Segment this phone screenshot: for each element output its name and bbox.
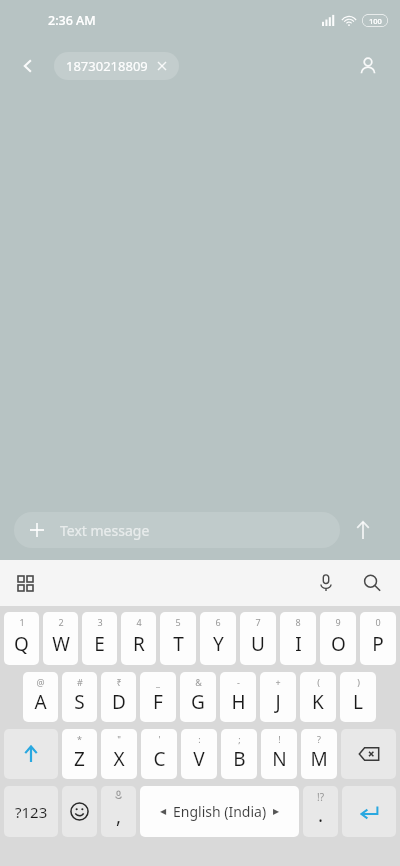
button[interactable]: ' xyxy=(141,729,177,779)
button[interactable]: @ xyxy=(23,672,58,722)
button[interactable]: Emoji xyxy=(62,786,97,837)
staticText: , xyxy=(116,803,122,829)
button[interactable]: Symbols xyxy=(4,786,58,837)
staticText: 4 xyxy=(136,616,142,628)
staticText: Text message xyxy=(60,521,150,540)
staticText: C xyxy=(153,746,166,772)
staticText: ₹ xyxy=(116,676,122,688)
staticText: 1 xyxy=(19,616,25,628)
button[interactable]: * xyxy=(62,729,97,779)
button[interactable]: ₹ xyxy=(101,672,136,722)
staticText: O xyxy=(331,631,346,657)
button[interactable]: Voice input xyxy=(308,565,344,601)
staticText: ? xyxy=(317,733,321,745)
staticText: G xyxy=(191,689,205,715)
button[interactable]: - xyxy=(220,672,256,722)
staticText: Q xyxy=(14,631,29,657)
staticText: & xyxy=(195,676,202,688)
staticText: . xyxy=(318,802,324,828)
button[interactable]: : xyxy=(181,729,217,779)
button[interactable]: ! xyxy=(261,729,297,779)
staticText: H xyxy=(231,689,246,715)
staticText: Y xyxy=(213,631,224,657)
staticText: ?123 xyxy=(15,802,48,822)
button[interactable]: " xyxy=(101,729,137,779)
staticText: A xyxy=(34,689,47,715)
staticText: S xyxy=(74,689,85,715)
button[interactable]: 18730218809 xyxy=(54,52,179,80)
staticText: K xyxy=(312,689,324,715)
staticText: 7 xyxy=(255,616,261,628)
staticText: ' xyxy=(158,733,161,745)
button[interactable]: Contact details xyxy=(348,46,388,86)
staticText: E xyxy=(94,631,105,657)
staticText: D xyxy=(112,689,126,715)
button[interactable]: Keyboard menu xyxy=(8,566,42,600)
button[interactable]: Period xyxy=(303,786,338,837)
staticText: + xyxy=(275,676,281,688)
button[interactable]: ( xyxy=(300,672,336,722)
staticText: ) xyxy=(357,676,360,688)
staticText: 18730218809 xyxy=(66,57,148,75)
staticText: B xyxy=(233,746,246,772)
staticText: R xyxy=(133,631,145,657)
button[interactable]: 9 xyxy=(320,612,356,665)
button[interactable]: # xyxy=(62,672,97,722)
staticText: ; xyxy=(238,733,241,745)
staticText: T xyxy=(173,631,184,657)
staticText: 8 xyxy=(295,616,301,628)
button[interactable]: + xyxy=(260,672,296,722)
staticText: ( xyxy=(317,676,320,688)
staticText: Z xyxy=(74,746,85,772)
staticText: U xyxy=(251,631,265,657)
staticText: W xyxy=(52,631,70,657)
staticText: @ xyxy=(36,676,45,688)
staticText: ! xyxy=(278,733,281,745)
button[interactable]: Enter xyxy=(342,786,396,837)
staticText: L xyxy=(353,689,363,715)
button[interactable]: _ xyxy=(140,672,176,722)
button[interactable]: Back xyxy=(10,48,46,84)
button[interactable]: 7 xyxy=(240,612,276,665)
staticText: 2 xyxy=(58,616,64,628)
staticText: 100 xyxy=(369,16,382,26)
button[interactable]: Comma xyxy=(101,786,136,837)
button[interactable]: 2 xyxy=(43,612,78,665)
staticText: - xyxy=(237,676,240,688)
button[interactable]: 1 xyxy=(4,612,39,665)
button[interactable]: 6 xyxy=(200,612,236,665)
staticText: N xyxy=(272,746,287,772)
staticText: 3 xyxy=(97,616,103,628)
button[interactable]: 0 xyxy=(360,612,396,665)
button[interactable]: 5 xyxy=(160,612,196,665)
button[interactable]: ) xyxy=(340,672,376,722)
button[interactable]: Space, English (India) xyxy=(140,786,299,837)
staticText: 6 xyxy=(215,616,221,628)
staticText: 2:36 AM xyxy=(48,12,96,29)
staticText: English (India) xyxy=(173,802,267,821)
staticText: P xyxy=(372,631,384,657)
staticText: ◀ xyxy=(160,807,167,816)
button[interactable]: 8 xyxy=(280,612,316,665)
staticText: ▶ xyxy=(273,807,280,816)
staticText: 5 xyxy=(175,616,181,628)
button[interactable]: ; xyxy=(221,729,257,779)
staticText: V xyxy=(193,746,205,772)
staticText: I xyxy=(295,631,302,657)
staticText: : xyxy=(198,733,201,745)
button[interactable]: Shift xyxy=(4,729,58,779)
button[interactable]: 4 xyxy=(121,612,156,665)
staticText: " xyxy=(117,733,121,745)
button[interactable]: 3 xyxy=(82,612,117,665)
staticText: 0 xyxy=(375,616,381,628)
button[interactable]: ? xyxy=(301,729,337,779)
staticText: * xyxy=(77,733,82,745)
button[interactable]: Text message xyxy=(14,512,340,548)
staticText: M xyxy=(310,746,328,772)
button[interactable]: Search xyxy=(354,565,390,601)
button[interactable]: & xyxy=(180,672,216,722)
staticText: F xyxy=(153,689,163,715)
button[interactable]: Send xyxy=(340,507,386,553)
staticText: J xyxy=(275,689,281,715)
button[interactable]: Backspace xyxy=(341,729,396,779)
